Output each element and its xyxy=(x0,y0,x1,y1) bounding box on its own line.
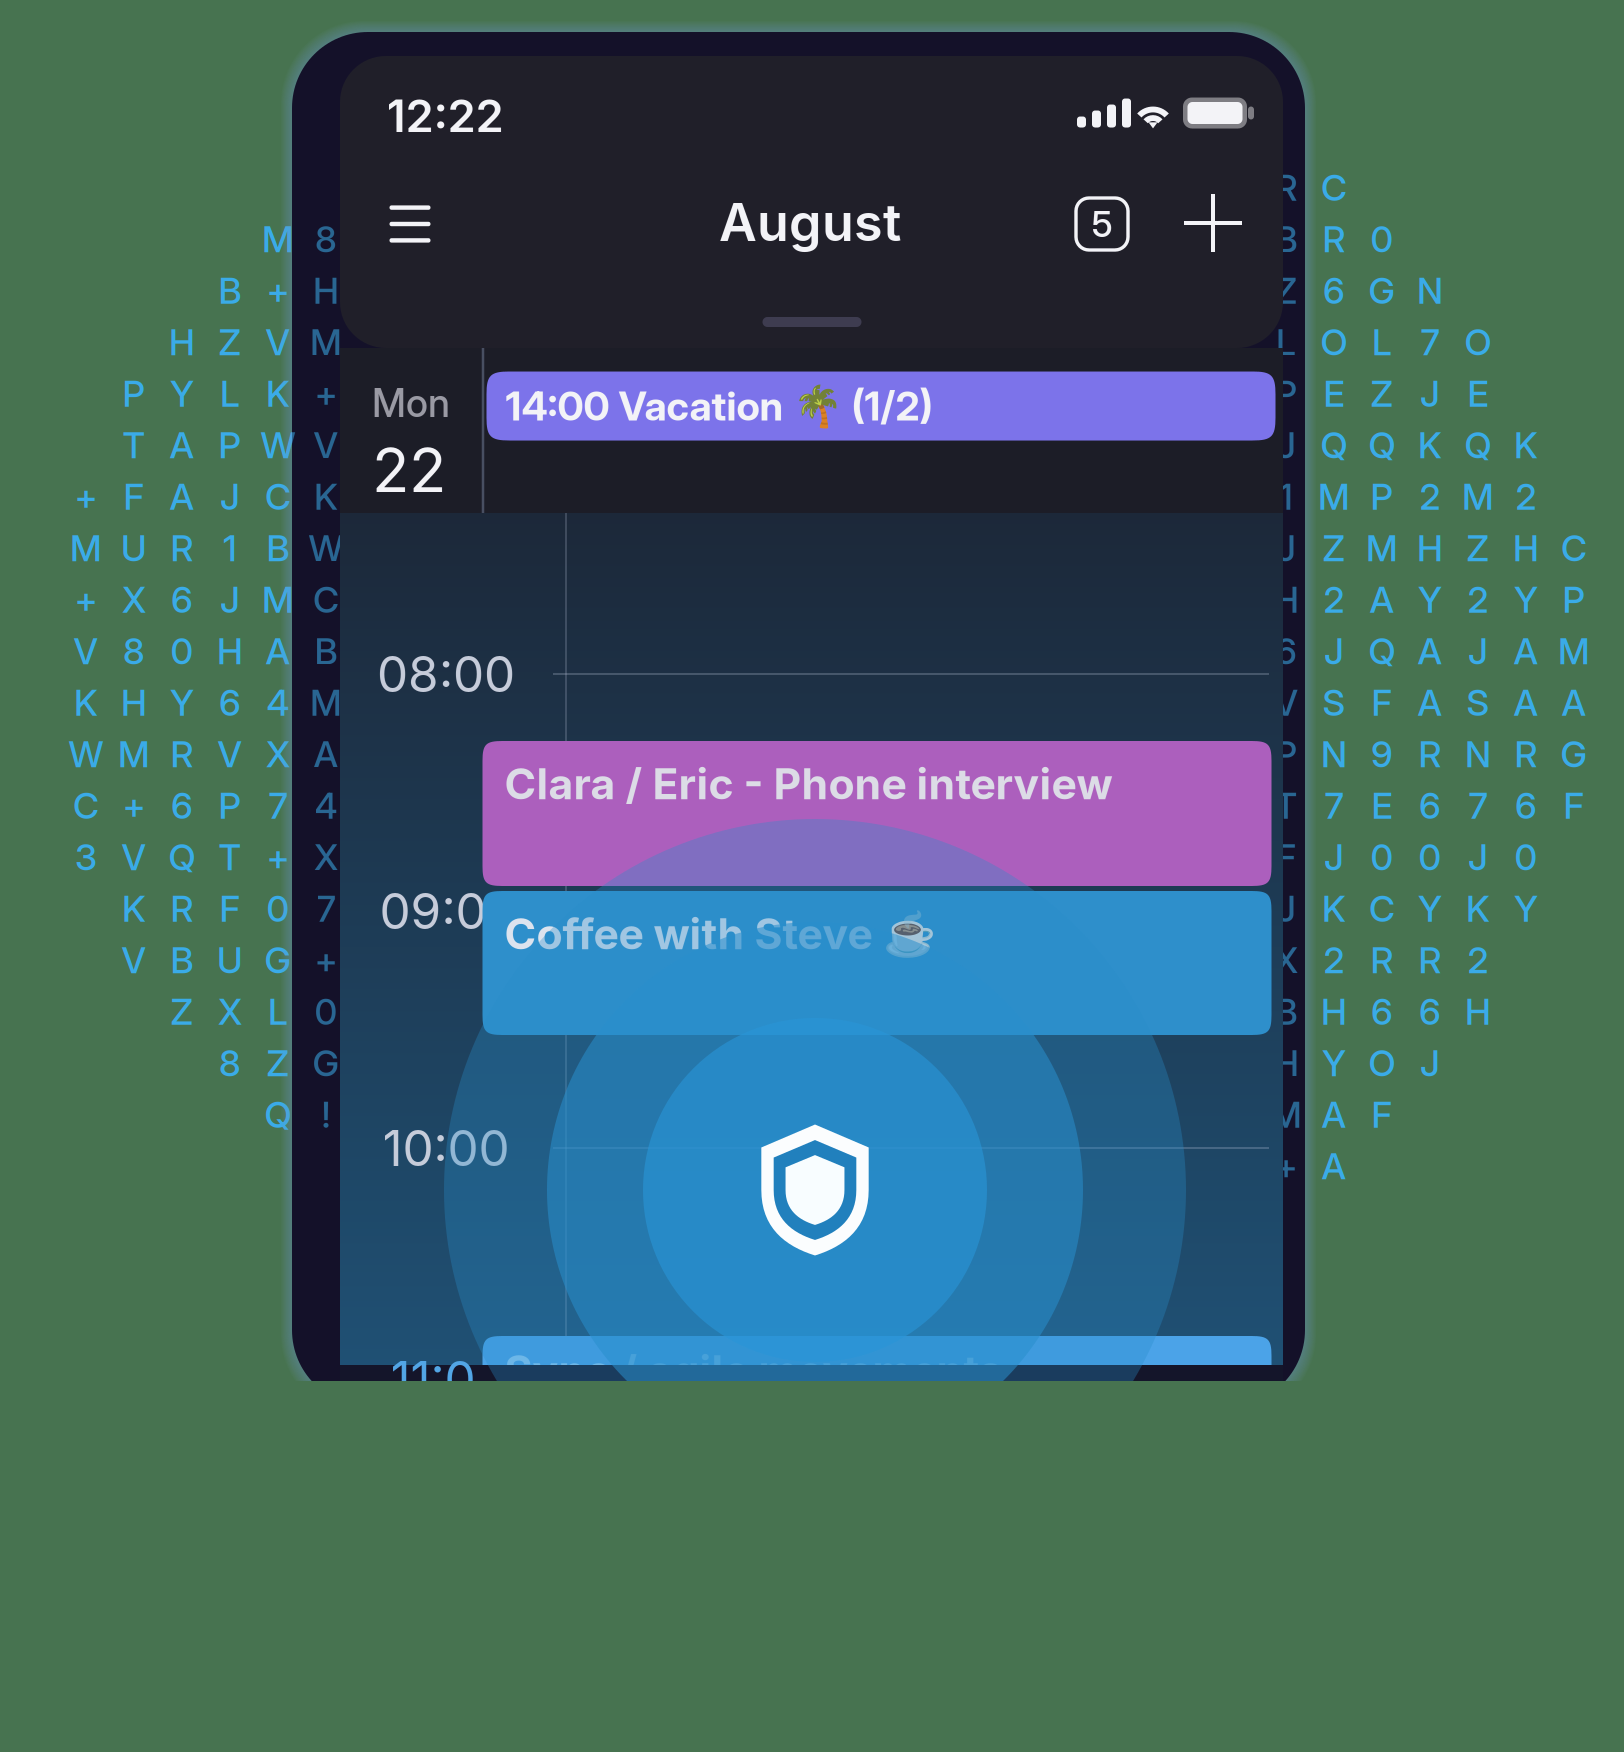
staticText: F xyxy=(123,475,144,519)
staticText: M xyxy=(310,681,342,725)
button[interactable]: Sync / agile movements xyxy=(482,1336,1271,1446)
button[interactable]: Clara / Eric - Phone interview xyxy=(482,741,1271,886)
staticText: + xyxy=(1274,1144,1297,1188)
staticText: M xyxy=(1318,475,1350,519)
staticText: P xyxy=(218,423,241,467)
staticText: J xyxy=(1276,423,1296,467)
staticText: A xyxy=(1369,578,1394,622)
staticText: + xyxy=(74,578,97,622)
button[interactable]: Menu xyxy=(370,184,450,264)
staticText: V xyxy=(121,938,146,982)
staticText: 8 xyxy=(219,1041,241,1085)
staticText: N xyxy=(1321,732,1347,776)
staticText: U xyxy=(121,526,147,570)
staticText: S xyxy=(1322,681,1345,725)
button[interactable]: Coffee with Steve ☕ xyxy=(482,891,1271,1035)
staticText: + xyxy=(314,938,337,982)
staticText: 7 xyxy=(1468,784,1487,828)
staticText: L xyxy=(1372,320,1392,364)
staticText: V xyxy=(1273,681,1298,725)
staticText: 1 xyxy=(223,526,237,570)
staticText: J xyxy=(1276,887,1296,931)
staticText: 6 xyxy=(1323,269,1345,313)
staticText: E xyxy=(1467,372,1488,416)
staticText: H xyxy=(1513,526,1539,570)
staticText: X xyxy=(266,732,290,776)
staticText: M xyxy=(1558,629,1590,673)
staticText: A xyxy=(265,629,290,673)
staticText: P xyxy=(1274,732,1297,776)
staticText: W xyxy=(68,732,103,776)
staticText: + xyxy=(314,938,337,982)
staticText: L xyxy=(220,372,240,416)
button[interactable]: 14:00 Vacation 🌴 (1/2) xyxy=(486,371,1275,440)
staticText: + xyxy=(1274,1144,1297,1188)
staticText: F xyxy=(1275,835,1296,879)
staticText: C xyxy=(1369,887,1395,931)
staticText: T xyxy=(218,835,241,879)
staticText: + xyxy=(266,269,289,313)
staticText: 22 xyxy=(372,433,446,507)
staticText: C xyxy=(1369,887,1395,931)
staticText: 6 xyxy=(1515,784,1537,828)
staticText: J xyxy=(1468,629,1488,673)
staticText: H xyxy=(1321,990,1347,1034)
staticText: S xyxy=(1466,681,1489,725)
staticText: Q xyxy=(168,835,195,879)
staticText: Z xyxy=(266,1041,289,1085)
staticText: K xyxy=(1322,887,1346,931)
staticText: W xyxy=(308,526,343,570)
staticText: Z xyxy=(170,990,193,1034)
staticText: Y xyxy=(1514,578,1538,622)
staticText: M xyxy=(310,681,342,725)
staticText: P xyxy=(1274,732,1297,776)
staticText: B xyxy=(170,938,193,982)
staticText: G xyxy=(312,1041,339,1085)
staticText: A xyxy=(1321,1093,1346,1137)
button[interactable]: Add event xyxy=(1174,184,1252,262)
staticText: 4 xyxy=(266,681,289,725)
staticText: R xyxy=(1274,166,1297,210)
staticText: Q xyxy=(264,1093,291,1137)
staticText: Y xyxy=(170,372,194,416)
staticText: 4 xyxy=(266,681,289,725)
staticText: C xyxy=(1321,166,1347,210)
staticText: A xyxy=(1321,1144,1346,1188)
staticText: V xyxy=(73,629,98,673)
staticText: 6 xyxy=(1275,629,1297,673)
staticText: + xyxy=(266,835,289,879)
staticText: M xyxy=(262,578,294,622)
staticText: L xyxy=(1276,320,1296,364)
staticText: B xyxy=(1274,990,1297,1034)
staticText: R xyxy=(170,887,193,931)
staticText: R xyxy=(1418,732,1441,776)
button[interactable]: Show 5 days xyxy=(1066,188,1138,260)
staticText: 7 xyxy=(316,887,335,931)
staticText: 2 xyxy=(1515,475,1536,519)
staticText: A xyxy=(313,732,338,776)
staticText: 3 xyxy=(75,835,97,879)
staticText: P xyxy=(1370,475,1393,519)
staticText: H xyxy=(1273,1041,1299,1085)
staticText: Mon xyxy=(372,380,450,426)
staticText: 4 xyxy=(314,784,337,828)
staticText: Y xyxy=(1418,887,1442,931)
staticText: O xyxy=(1320,320,1347,364)
staticText: Z xyxy=(1466,526,1489,570)
staticText: H xyxy=(1321,990,1347,1034)
staticText: C xyxy=(1561,526,1587,570)
staticText: K xyxy=(1466,887,1490,931)
staticText: B xyxy=(1274,217,1297,261)
staticText: 7 xyxy=(1324,784,1343,828)
staticText: 0 xyxy=(170,629,193,673)
staticText: S xyxy=(1466,681,1489,725)
staticText: Z xyxy=(266,1041,289,1085)
staticText: F xyxy=(1371,681,1392,725)
staticText: K xyxy=(266,372,290,416)
staticText: V xyxy=(265,320,290,364)
staticText: Z xyxy=(218,320,241,364)
staticText: X xyxy=(314,835,338,879)
staticText: G xyxy=(1368,269,1395,313)
staticText: H xyxy=(121,681,147,725)
staticText: W xyxy=(68,732,103,776)
